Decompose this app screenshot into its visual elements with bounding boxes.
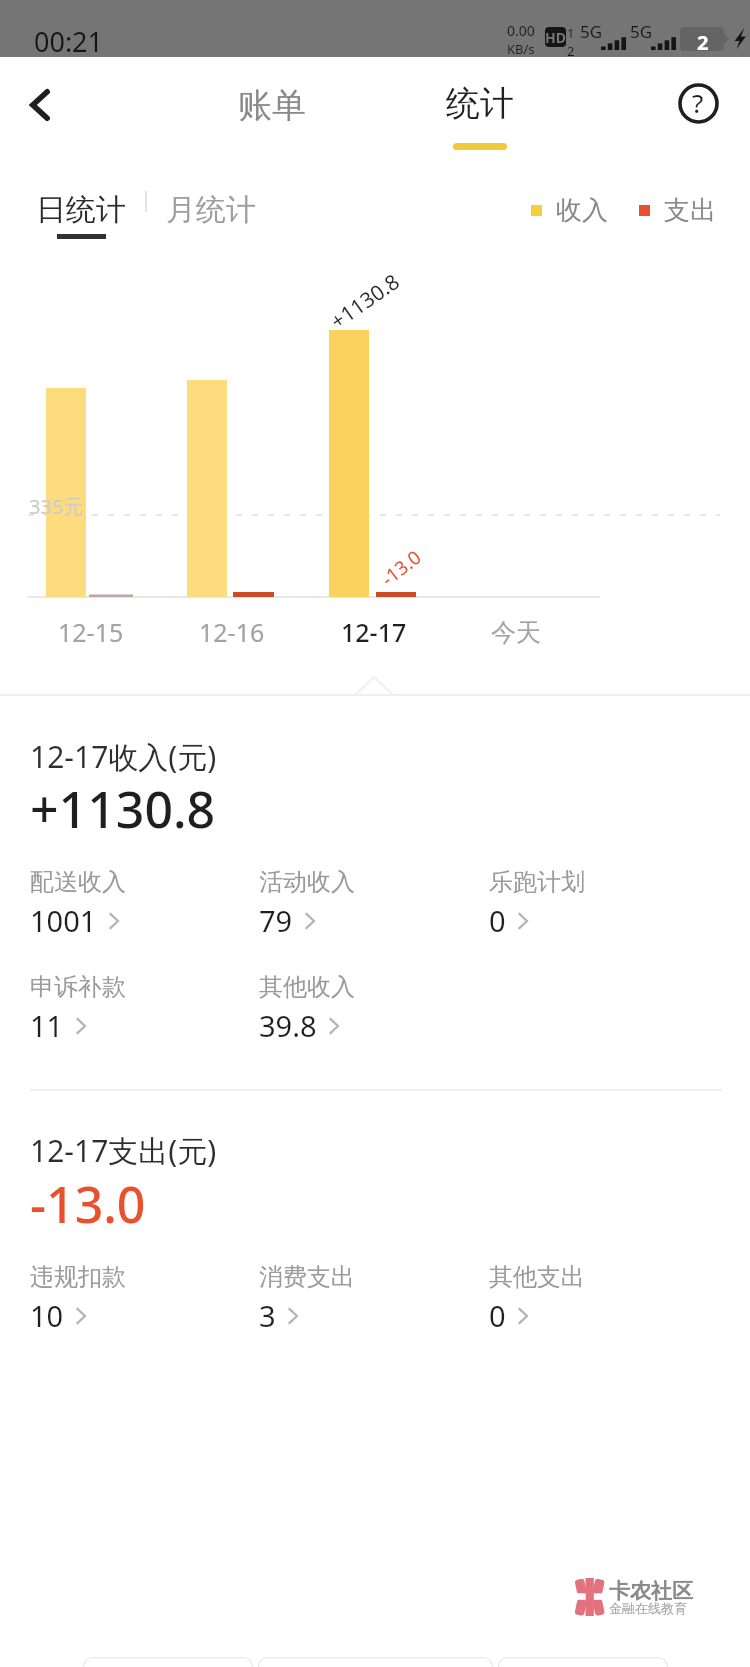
staticText: ? [692,85,704,120]
button[interactable]: 违规扣款 [30,1262,230,1335]
staticText: 1001 [30,901,97,940]
staticText: 00:21 [34,23,104,60]
button[interactable]: 申诉补款 [30,972,230,1045]
staticText: 79 [259,901,293,940]
staticText: HD [545,28,566,47]
staticText: 其他支出 [489,1262,585,1292]
staticText: +1130.8 [325,267,405,336]
button[interactable]: 消费支出 [259,1262,459,1335]
button[interactable]: 月统计 [166,191,256,229]
staticText: 5G [580,20,603,43]
staticText: 配送收入 [30,867,126,897]
staticText: 12-17收入(元) [30,736,217,777]
staticText: 2 [567,42,575,60]
button[interactable]: 12-16 [172,610,292,654]
staticText: 金融在线教育 [609,1600,687,1616]
button[interactable]: 乐跑计划 [489,867,689,940]
button[interactable]: Recents [498,1657,668,1667]
staticText: 3 [259,1296,276,1335]
button[interactable]: Help [658,63,738,143]
staticText: 39.8 [259,1006,317,1045]
button[interactable]: 账单 [238,84,306,127]
staticText: 统计 [446,82,514,125]
button[interactable]: 统计 [446,82,514,150]
staticText: 12-16 [199,615,265,649]
staticText: +1130.8 [30,775,216,843]
button[interactable]: 其他收入 [259,972,459,1045]
staticText: 今天 [491,617,541,648]
staticText: 申诉补款 [30,972,126,1002]
staticText: 支出 [664,194,716,227]
staticText: -13.0 [30,1170,146,1238]
staticText: 收入 [556,194,608,227]
staticText: 卡农社区 [609,1578,693,1604]
button[interactable]: 日统计 [36,191,126,239]
staticText: 违规扣款 [30,1262,126,1292]
button[interactable]: 活动收入 [259,867,459,940]
staticText: KB/s [507,40,535,58]
button[interactable]: Home [258,1657,493,1667]
staticText: 5G [630,20,653,43]
staticText: 活动收入 [259,867,355,897]
staticText: -13.0 [376,544,426,592]
staticText: 0 [489,901,506,940]
staticText: 消费支出 [259,1262,355,1292]
button[interactable]: 其他支出 [489,1262,689,1335]
staticText: 12-15 [58,615,124,649]
staticText: 账单 [238,84,306,127]
staticText: 11 [30,1006,64,1045]
staticText: 乐跑计划 [489,867,585,897]
button[interactable]: Back [83,1657,253,1667]
staticText: 其他收入 [259,972,355,1002]
button[interactable]: Back [0,58,80,151]
staticText: 12-17支出(元) [30,1130,217,1171]
staticText: 2 [697,29,709,56]
staticText: 日统计 [36,191,126,229]
button[interactable]: 配送收入 [30,867,230,940]
button[interactable]: 12-15 [31,610,151,654]
staticText: 1 [567,24,575,42]
staticText: 12-17 [341,615,407,649]
button[interactable]: 12-17 [314,610,434,654]
staticText: 0 [489,1296,506,1335]
staticText: 335元 [29,493,84,520]
staticText: 10 [30,1296,64,1335]
staticText: 0.00 [507,21,535,40]
button[interactable]: 今天 [456,610,576,654]
